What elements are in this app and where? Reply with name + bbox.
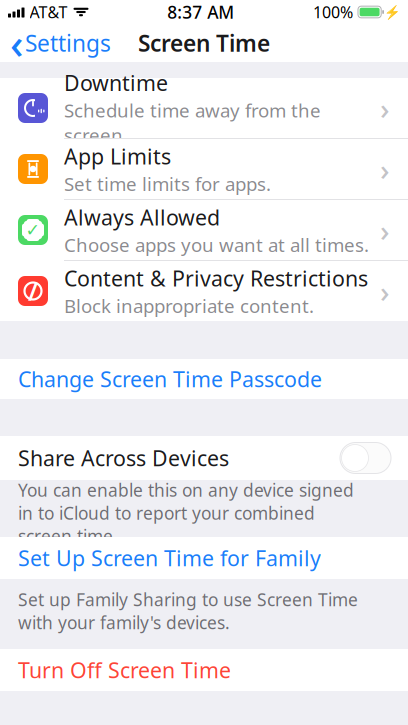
- staticText: 100%: [313, 1, 353, 23]
- staticText: Schedule time away from the screen.: [64, 98, 321, 147]
- staticText: 8:37 AM: [167, 0, 234, 23]
- staticText: Downtime: [64, 68, 168, 97]
- button[interactable]: Change Screen Time Passcode: [0, 359, 408, 399]
- staticText: AT&T: [29, 1, 67, 23]
- staticText: Set time limits for apps.: [64, 171, 271, 196]
- staticText: App Limits: [64, 142, 171, 170]
- staticText: Content & Privacy Restrictions: [64, 264, 368, 292]
- staticText: ✓: [25, 220, 40, 240]
- staticText: ›: [380, 271, 390, 310]
- staticText: Choose apps you want at all times.: [64, 232, 369, 257]
- staticText: ‹: [10, 16, 23, 70]
- staticText: Set up Family Sharing to use Screen Time…: [18, 588, 358, 634]
- staticText: ›: [380, 210, 390, 249]
- staticText: Share Across Devices: [18, 444, 229, 472]
- staticText: Turn Off Screen Time: [18, 656, 231, 684]
- button[interactable]: /: [0, 261, 408, 321]
- staticText: /: [28, 274, 38, 308]
- staticText: You can enable this on any device signed…: [18, 478, 354, 548]
- staticText: ›: [380, 149, 390, 188]
- button[interactable]: Set Up Screen Time for Family: [0, 537, 408, 579]
- staticText: ›: [380, 88, 390, 127]
- button[interactable]: ✓: [0, 200, 408, 260]
- staticText: Change Screen Time Passcode: [18, 365, 322, 393]
- staticText: Always Allowed: [64, 203, 220, 231]
- staticText: Screen Time: [138, 28, 270, 58]
- button[interactable]: Share Across Devices: [0, 436, 408, 480]
- staticText: Set Up Screen Time for Family: [18, 544, 321, 572]
- staticText: ⚡: [384, 4, 401, 20]
- button[interactable]: Downtime: [0, 78, 408, 138]
- staticText: Settings: [25, 28, 111, 58]
- button[interactable]: Turn Off Screen Time: [0, 649, 408, 691]
- button[interactable]: App Limits: [0, 139, 408, 199]
- button[interactable]: Back to Settings: [0, 24, 119, 62]
- staticText: Block inappropriate content.: [64, 293, 314, 318]
